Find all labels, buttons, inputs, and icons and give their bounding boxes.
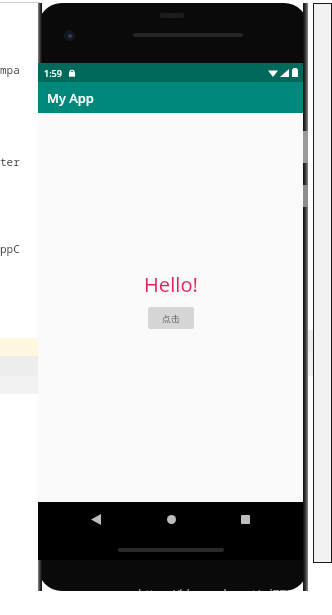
staticText: https://blog.csdn.net/wj778 (138, 586, 294, 602)
staticText: ppC (0, 241, 20, 256)
button[interactable]: Back (79, 502, 113, 536)
staticText: ter (0, 154, 20, 169)
button[interactable]: Recent apps (228, 502, 262, 536)
staticText: 1:59 (44, 67, 62, 79)
button[interactable]: 点击 (148, 307, 194, 329)
staticText: My App (47, 89, 94, 107)
button[interactable]: My App (38, 82, 303, 113)
staticText: Hello! (144, 271, 198, 298)
button[interactable]: Home (154, 502, 188, 536)
staticText: mpa (0, 62, 20, 77)
staticText: 点击 (162, 313, 180, 324)
